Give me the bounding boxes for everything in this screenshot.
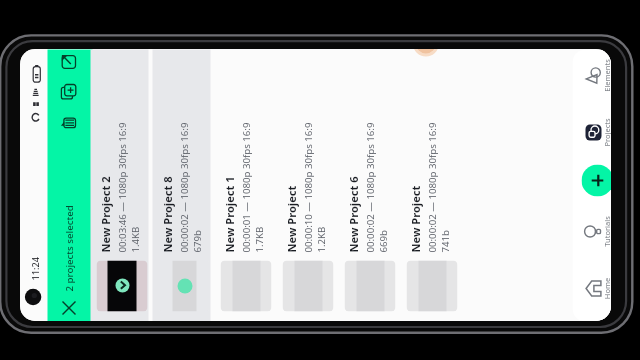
button[interactable]: Close selection <box>59 298 78 317</box>
button[interactable]: Duplicate <box>58 81 78 101</box>
button[interactable]: Projects <box>572 110 611 154</box>
button[interactable]: New Project 6 <box>338 49 396 321</box>
staticText: 00:00:02 — 1080p 30fps 16:9 <box>177 122 190 252</box>
staticText: 679b <box>190 229 203 252</box>
staticText: 2 projects selected <box>62 204 75 291</box>
button[interactable]: New Project <box>276 49 334 321</box>
staticText: New Project 2 <box>97 175 112 252</box>
staticText: 11:24 <box>28 256 41 280</box>
button[interactable]: New Project 8 <box>152 49 210 321</box>
staticText: 1.2KB <box>314 226 327 252</box>
staticText: New Project 1 <box>221 175 236 252</box>
button[interactable]: Home <box>572 266 611 310</box>
staticText: 1.7KB <box>252 226 265 252</box>
button[interactable]: Caption <box>58 112 78 132</box>
staticText: Projects <box>601 110 611 154</box>
staticText: 00:00:10 — 1080p 30fps 16:9 <box>301 122 314 252</box>
staticText: 00:00:02 — 1080p 30fps 16:9 <box>425 122 438 252</box>
staticText: New Project <box>407 185 422 252</box>
staticText: 00:00:02 — 1080p 30fps 16:9 <box>363 122 376 252</box>
staticText: Elements <box>601 53 611 97</box>
staticText: Tutorials <box>601 209 611 253</box>
button[interactable]: New Project <box>400 49 458 321</box>
staticText: New Project 8 <box>159 175 174 252</box>
staticText: 669b <box>376 229 389 252</box>
button[interactable]: Tutorials <box>572 209 611 253</box>
button[interactable]: New Project 2 <box>90 49 148 321</box>
staticText: New Project 6 <box>345 175 360 252</box>
staticText: 00:03:46 — 1080p 30fps 16:9 <box>115 122 128 252</box>
button[interactable]: New project <box>581 164 611 196</box>
staticText: 741b <box>438 229 451 252</box>
staticText: 00:00:01 — 1080p 30fps 16:9 <box>239 122 252 252</box>
button[interactable]: Elements <box>572 53 611 97</box>
button[interactable]: Export <box>58 51 78 71</box>
staticText: 1.4KB <box>128 226 141 252</box>
staticText: Home <box>601 266 611 310</box>
staticText: New Project <box>283 185 298 252</box>
button[interactable]: New Project 1 <box>214 49 272 321</box>
